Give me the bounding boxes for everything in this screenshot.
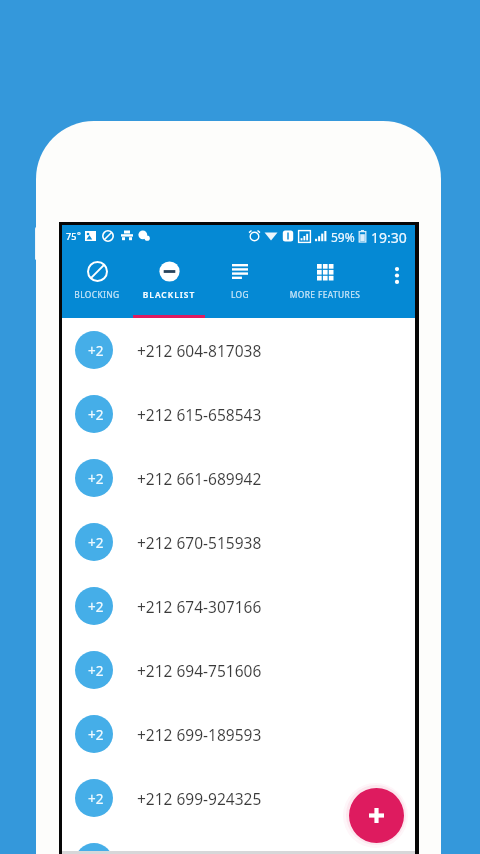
button[interactable]: LOG bbox=[204, 260, 276, 316]
staticText: +212 674-307166 bbox=[137, 596, 262, 617]
staticText: +2 bbox=[88, 598, 104, 616]
button[interactable]: BLACKLIST bbox=[133, 260, 205, 316]
staticText: +212 661-689942 bbox=[137, 468, 262, 489]
staticText: BLACKLIST bbox=[133, 289, 205, 300]
staticText: 59% bbox=[331, 229, 355, 245]
staticText: +2 bbox=[88, 342, 104, 360]
staticText: +212 694-751606 bbox=[137, 660, 262, 681]
staticText: ° bbox=[77, 229, 81, 241]
button[interactable]: +2 bbox=[62, 574, 415, 638]
staticText: +212 699-189593 bbox=[137, 724, 262, 745]
staticText: +2 bbox=[88, 406, 104, 424]
button[interactable]: +2 bbox=[62, 318, 415, 382]
button[interactable]: +2 bbox=[62, 382, 415, 446]
staticText: LOG bbox=[204, 289, 276, 300]
button[interactable]: +2 bbox=[62, 830, 415, 854]
staticText: +212 670-515938 bbox=[137, 532, 262, 553]
staticText: +2 bbox=[88, 534, 104, 552]
button[interactable]: Add number bbox=[349, 788, 404, 843]
staticText: +2 bbox=[88, 726, 104, 744]
button[interactable]: +2 bbox=[62, 638, 415, 702]
staticText: +212 699-924325 bbox=[137, 788, 262, 809]
staticText: MORE FEATURES bbox=[275, 289, 375, 300]
button[interactable]: BLOCKING bbox=[61, 260, 133, 316]
staticText: +2 bbox=[88, 662, 104, 680]
button[interactable]: +2 bbox=[62, 446, 415, 510]
staticText: +212 604-817038 bbox=[137, 340, 262, 361]
staticText: +2 bbox=[88, 470, 104, 488]
staticText: BLOCKING bbox=[61, 289, 133, 300]
staticText: 19:30 bbox=[371, 228, 407, 247]
button[interactable]: +2 bbox=[62, 702, 415, 766]
staticText: +212 615-658543 bbox=[137, 404, 262, 425]
button[interactable]: +2 bbox=[62, 510, 415, 574]
button[interactable]: +2 bbox=[62, 766, 415, 830]
staticText: 75 bbox=[66, 230, 77, 242]
button[interactable]: More options bbox=[381, 259, 413, 291]
button[interactable]: MORE FEATURES bbox=[275, 260, 375, 316]
staticText: +2 bbox=[88, 790, 104, 808]
